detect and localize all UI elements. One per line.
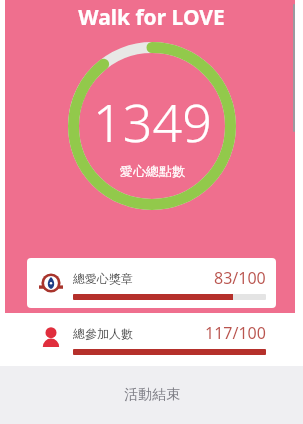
staticText: 117/100 — [205, 322, 266, 344]
staticText: 1349 — [93, 86, 212, 157]
staticText: 活動結束 — [124, 386, 180, 404]
staticText: 愛心總點數 — [120, 163, 185, 179]
staticText: Walk for LOVE — [78, 3, 225, 32]
other: Participants — [39, 326, 63, 350]
button[interactable]: 活動結束 — [0, 366, 303, 424]
staticText: 總參加人數 — [73, 326, 133, 341]
other: Medal — [39, 271, 63, 295]
button[interactable]: Participants — [27, 313, 276, 363]
staticText: 83/100 — [214, 267, 266, 289]
staticText: 總愛心獎章 — [73, 271, 133, 286]
button[interactable]: Medal — [27, 258, 276, 308]
